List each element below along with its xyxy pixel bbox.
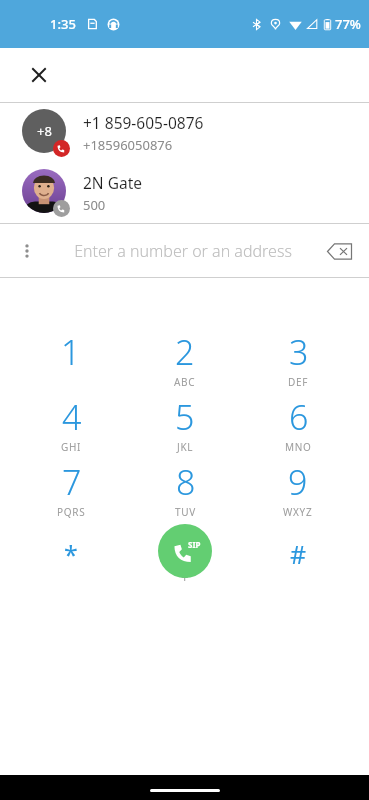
button[interactable]: 0 — [140, 521, 230, 586]
staticText: 1 — [61, 329, 81, 375]
button[interactable]: Close — [22, 58, 56, 92]
staticText: 77% — [335, 15, 361, 33]
staticText: JKL — [177, 440, 194, 454]
staticText: 9 — [288, 459, 308, 505]
button[interactable]: 5 — [140, 391, 230, 456]
button[interactable]: Backspace — [319, 231, 359, 271]
staticText: 3 — [289, 329, 309, 375]
staticText: MNO — [285, 440, 312, 454]
staticText: PQRS — [57, 505, 86, 519]
staticText: +18596050876 — [83, 136, 173, 154]
staticText: 7 — [62, 459, 82, 505]
button[interactable]: # — [253, 521, 343, 586]
staticText: 4 — [62, 394, 82, 440]
staticText: 1:35 — [50, 15, 76, 33]
staticText: + — [181, 568, 190, 586]
button[interactable]: 7 — [26, 456, 116, 521]
staticText: 500 — [83, 196, 106, 214]
staticText: 2 — [175, 329, 195, 375]
button[interactable]: More options — [8, 232, 46, 270]
staticText: * — [64, 537, 78, 571]
staticText: +8 — [37, 122, 52, 140]
staticText: +1 859-605-0876 — [83, 112, 204, 133]
button[interactable]: 8 — [140, 456, 230, 521]
staticText: 6 — [289, 394, 309, 440]
staticText: 0 — [175, 522, 195, 568]
staticText: DEF — [288, 375, 309, 389]
button[interactable]: Enter a number or an address — [46, 224, 319, 277]
staticText: WXYZ — [283, 505, 313, 519]
staticText: 2N Gate — [83, 172, 142, 193]
button[interactable]: 1 — [26, 326, 116, 391]
button[interactable]: 2N Gate — [0, 163, 369, 223]
staticText: 8 — [176, 459, 196, 505]
button[interactable]: 6 — [253, 391, 343, 456]
button[interactable]: * — [26, 521, 116, 586]
button[interactable]: 9 — [253, 456, 343, 521]
button[interactable]: SIP call — [158, 524, 212, 578]
button[interactable]: 4 — [26, 391, 116, 456]
button[interactable]: 2 — [140, 326, 230, 391]
button[interactable]: +8 — [0, 103, 369, 163]
staticText: SIP — [188, 539, 201, 550]
staticText: Enter a number or an address — [74, 240, 292, 262]
button[interactable]: 3 — [253, 326, 343, 391]
staticText: GHI — [61, 440, 82, 454]
staticText: ABC — [174, 375, 196, 389]
staticText: 5 — [175, 394, 195, 440]
staticText: TUV — [175, 505, 196, 519]
staticText: # — [290, 537, 307, 571]
